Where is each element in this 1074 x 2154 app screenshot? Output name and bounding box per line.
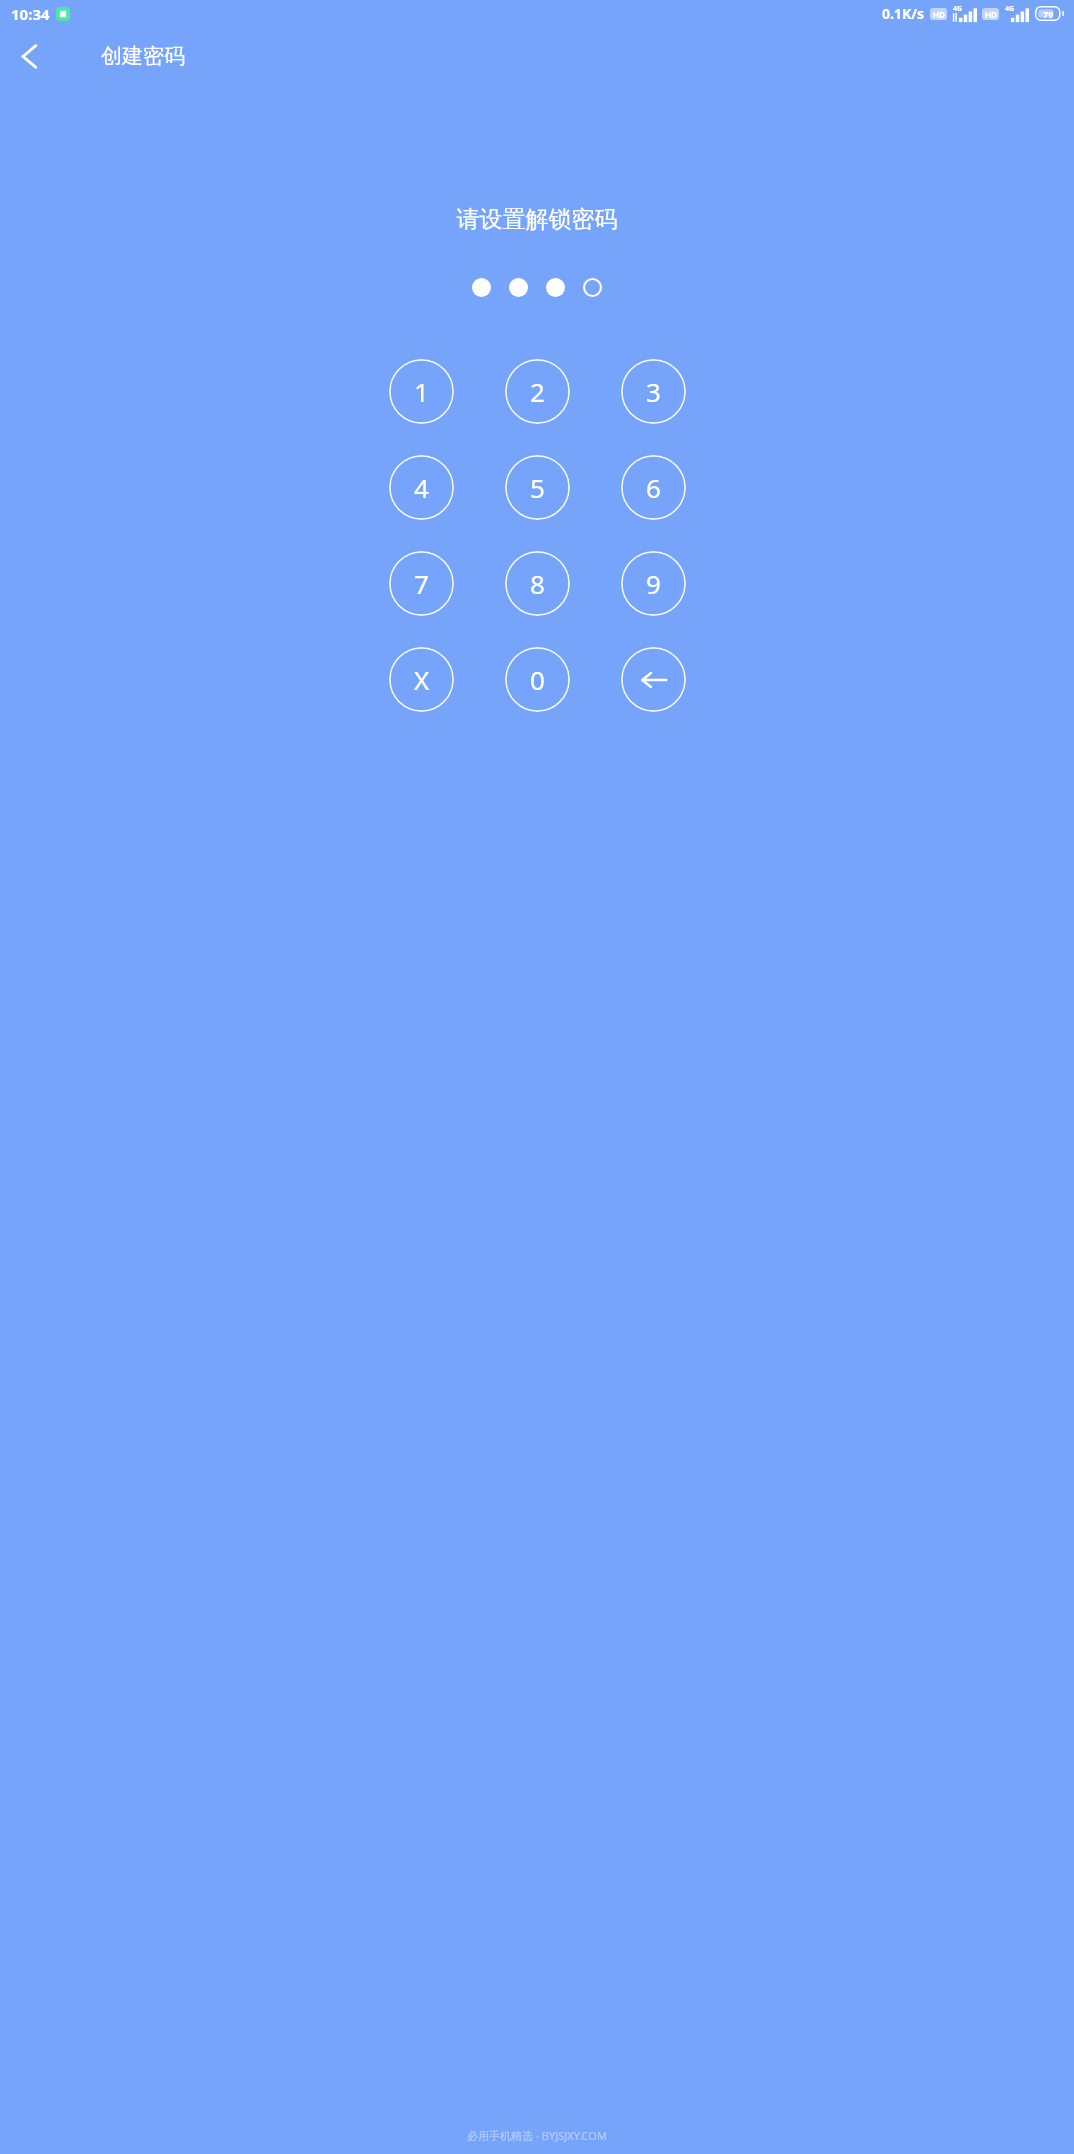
button[interactable]: 2 (505, 359, 570, 424)
staticText: 10:34 (11, 4, 50, 24)
staticText: 7 (414, 566, 429, 601)
button[interactable]: 9 (621, 551, 686, 616)
staticText: 3 (646, 374, 661, 409)
staticText: 4G (953, 4, 963, 14)
button[interactable]: 8 (505, 551, 570, 616)
staticText: 6 (646, 470, 661, 505)
staticText: HD (985, 9, 997, 20)
button[interactable]: 6 (621, 455, 686, 520)
staticText: 5 (530, 470, 545, 505)
button[interactable]: 1 (389, 359, 454, 424)
staticText: 2 (530, 374, 545, 409)
staticText: 创建密码 (101, 43, 185, 69)
staticText: 1 (414, 374, 429, 409)
staticText: 79 (1043, 8, 1054, 20)
staticText: X (414, 662, 430, 697)
staticText: HD (933, 9, 945, 20)
button[interactable]: 3 (621, 359, 686, 424)
button[interactable]: Clear (389, 647, 454, 712)
staticText: 请设置解锁密码 (0, 205, 1074, 234)
staticText: 必用手机精选 · BYJSJXY.COM (0, 2128, 1074, 2143)
staticText: 4 (414, 470, 429, 505)
staticText: 0 (530, 662, 545, 697)
button[interactable]: 4 (389, 455, 454, 520)
button[interactable]: 7 (389, 551, 454, 616)
button[interactable]: 0 (505, 647, 570, 712)
staticText: 8 (530, 566, 545, 601)
staticText: 0.1K/s (882, 4, 925, 23)
button[interactable]: 5 (505, 455, 570, 520)
button[interactable]: Delete (621, 647, 686, 712)
staticText: 9 (646, 566, 661, 601)
button[interactable]: Back (6, 32, 54, 80)
staticText: 4G (1005, 4, 1015, 14)
